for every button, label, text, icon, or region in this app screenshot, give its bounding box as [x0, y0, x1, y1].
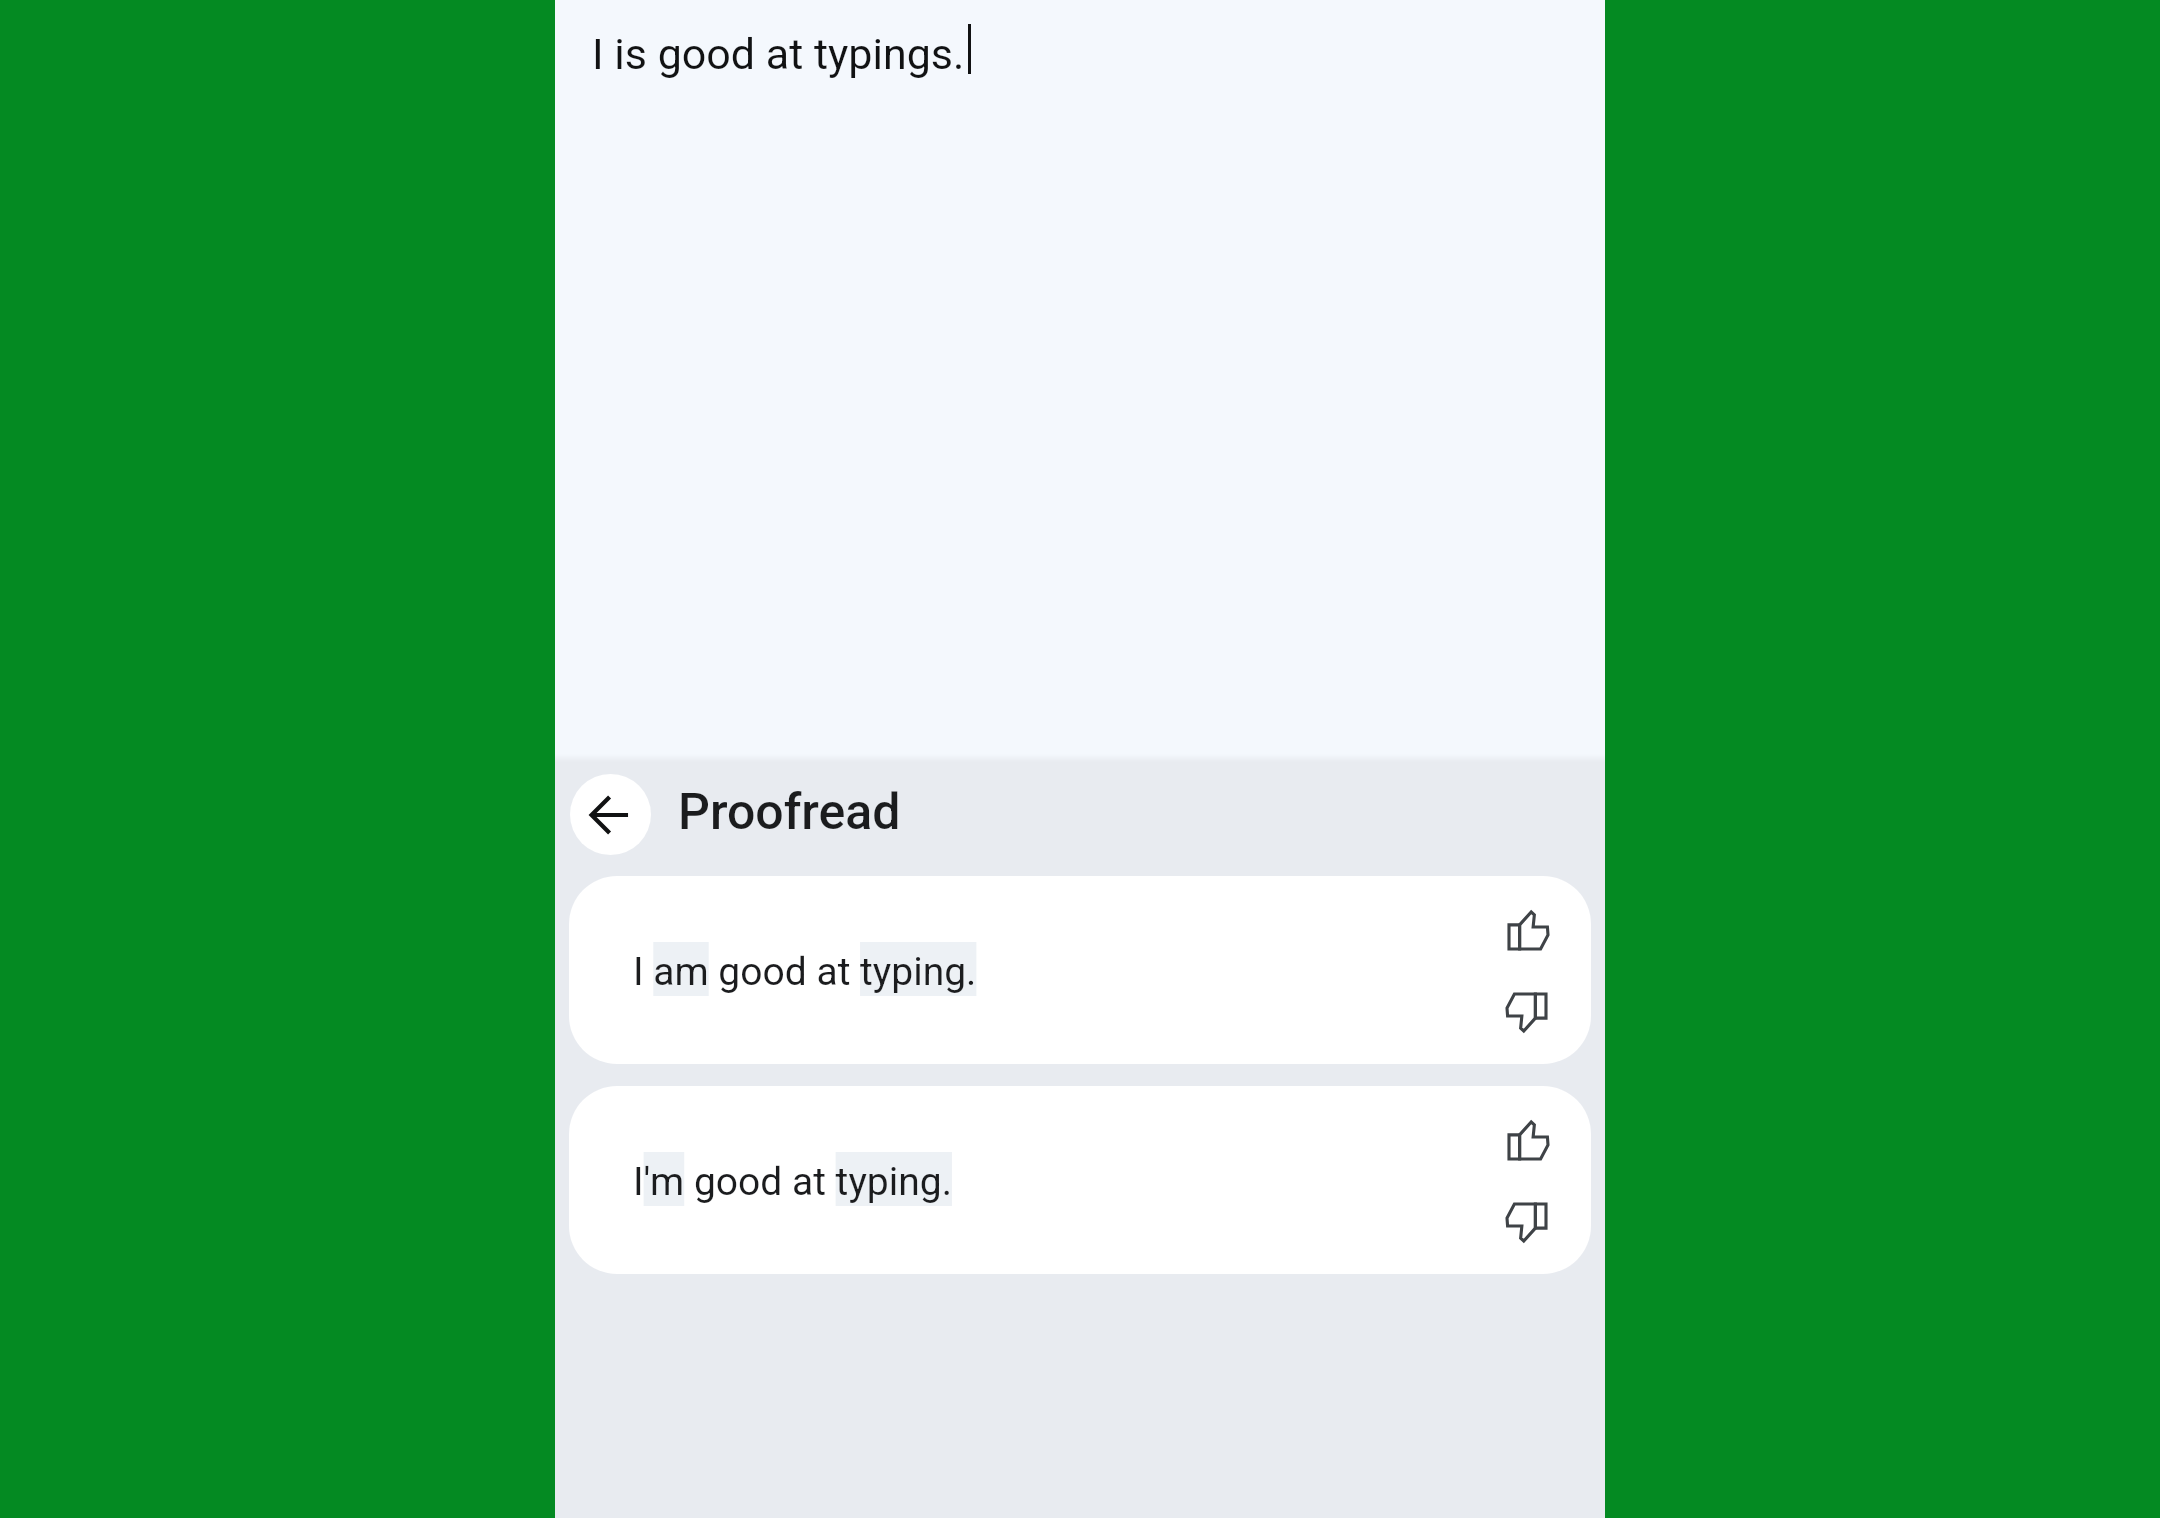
staticText: I is good at typings. [592, 23, 965, 81]
staticText: Proofread [678, 781, 901, 841]
button[interactable]: Thumbs down [1496, 982, 1556, 1042]
button[interactable]: I am good at typing. [569, 876, 1591, 1064]
button[interactable]: Thumbs up [1498, 1110, 1558, 1170]
button[interactable]: I'm good at typing. [569, 1086, 1591, 1274]
button[interactable]: Back [570, 774, 651, 855]
button[interactable]: Thumbs up [1498, 900, 1558, 960]
button[interactable]: Thumbs down [1496, 1192, 1556, 1252]
staticText: I'm good at typing. [633, 1152, 952, 1206]
staticText: I am good at typing. [633, 942, 977, 996]
